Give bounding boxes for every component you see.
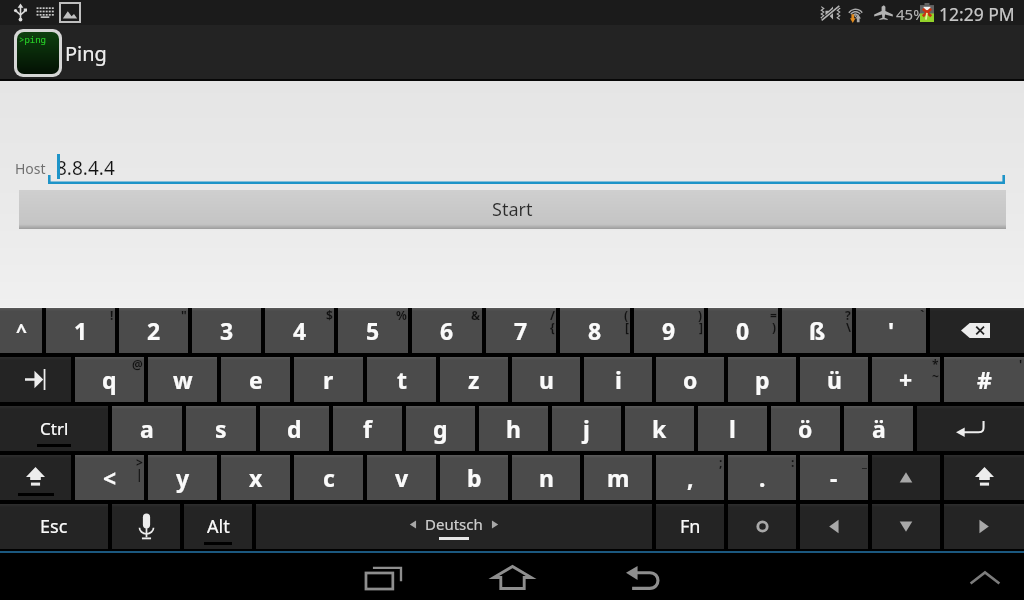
button[interactable]: Show keyboard [952, 553, 1018, 600]
button[interactable]: - [800, 455, 868, 500]
button[interactable]: Home [475, 553, 550, 600]
button[interactable]: w [148, 357, 217, 402]
button[interactable] [872, 455, 940, 500]
button[interactable]: 8 [560, 308, 630, 353]
staticText: 12:29 PM [939, 2, 1015, 26]
button[interactable]: p [728, 357, 796, 402]
staticText: \ [846, 319, 851, 335]
staticText: h [506, 413, 521, 444]
button[interactable]: o [656, 357, 724, 402]
button[interactable]: Ctrl [0, 406, 108, 451]
button[interactable]: z [440, 357, 508, 402]
button[interactable]: Alt [184, 504, 252, 549]
button[interactable]: f [333, 406, 402, 451]
button[interactable]: t [367, 357, 436, 402]
button[interactable]: d [260, 406, 329, 451]
staticText: m [607, 462, 630, 493]
staticText: Fn [680, 514, 701, 539]
button[interactable]: 8.8.4.4 [48, 151, 1005, 184]
button[interactable]: k [625, 406, 694, 451]
button[interactable]: e [221, 357, 290, 402]
button[interactable] [112, 504, 180, 549]
button[interactable] [728, 504, 796, 549]
button[interactable]: a [112, 406, 182, 451]
button[interactable]: Ping app icon [17, 32, 59, 74]
staticText: p [755, 364, 770, 395]
button[interactable]: 1 [46, 308, 115, 353]
button[interactable]: ä [844, 406, 913, 451]
button[interactable]: , [656, 455, 724, 500]
button[interactable] [0, 455, 71, 500]
button[interactable]: 5 [338, 308, 408, 353]
button[interactable]: # [944, 357, 1024, 402]
button[interactable]: x [221, 455, 290, 500]
button[interactable]: ö [771, 406, 840, 451]
button[interactable] [917, 406, 1024, 451]
staticText: . [759, 462, 766, 493]
button[interactable] [930, 308, 1024, 353]
staticText: < [103, 462, 117, 493]
button[interactable]: 7 [486, 308, 556, 353]
staticText: w [173, 364, 193, 395]
button[interactable]: 2 [119, 308, 188, 353]
button[interactable]: < [75, 455, 144, 500]
button[interactable]: m [584, 455, 652, 500]
button[interactable] [944, 504, 1024, 549]
button[interactable]: h [479, 406, 548, 451]
button[interactable]: q [75, 357, 144, 402]
staticText: + [899, 364, 913, 395]
staticText: / [550, 307, 555, 323]
button[interactable]: 4 [265, 308, 334, 353]
staticText: ß [809, 315, 826, 346]
button[interactable]: ^ [0, 308, 42, 353]
staticText: ( [624, 307, 629, 323]
staticText: Host [15, 159, 46, 178]
staticText: _ [862, 454, 867, 470]
button[interactable]: Recent apps [345, 553, 420, 600]
staticText: ~ [932, 368, 939, 384]
button[interactable]: ü [800, 357, 868, 402]
button[interactable]: Back [605, 553, 680, 600]
button[interactable] [800, 504, 868, 549]
staticText: | [136, 466, 143, 482]
button[interactable]: s [186, 406, 256, 451]
button[interactable]: 9 [634, 308, 704, 353]
button[interactable]: j [552, 406, 621, 451]
button[interactable]: l [698, 406, 767, 451]
staticText: a [140, 413, 154, 444]
button[interactable]: g [406, 406, 475, 451]
button[interactable]: i [584, 357, 652, 402]
button[interactable]: 0 [708, 308, 778, 353]
staticText: @ [132, 356, 143, 372]
button[interactable]: ' [856, 308, 926, 353]
button[interactable]: c [294, 455, 363, 500]
button[interactable]: Fn [656, 504, 724, 549]
staticText: ; [719, 454, 723, 470]
button[interactable]: Deutsch [256, 504, 652, 549]
button[interactable]: Esc [0, 504, 108, 549]
button[interactable]: ß [782, 308, 852, 353]
staticText: f [363, 413, 372, 444]
button[interactable]: r [294, 357, 363, 402]
button[interactable]: 6 [412, 308, 482, 353]
button[interactable]: Start [19, 190, 1006, 229]
button[interactable]: 3 [192, 308, 261, 353]
button[interactable]: . [728, 455, 796, 500]
staticText: ' [1019, 356, 1023, 372]
button[interactable]: y [148, 455, 217, 500]
staticText: * [932, 356, 939, 372]
button[interactable]: u [512, 357, 580, 402]
button[interactable] [0, 357, 71, 402]
button[interactable]: n [512, 455, 580, 500]
staticText: o [683, 364, 698, 395]
button[interactable]: v [367, 455, 436, 500]
staticText: 45% [896, 4, 926, 24]
button[interactable]: b [440, 455, 508, 500]
staticText: Deutsch [425, 514, 483, 534]
staticText: q [102, 364, 117, 395]
button[interactable] [944, 455, 1024, 500]
button[interactable]: + [872, 357, 940, 402]
button[interactable] [872, 504, 940, 549]
staticText: ä [872, 413, 886, 444]
staticText: s [215, 413, 227, 444]
